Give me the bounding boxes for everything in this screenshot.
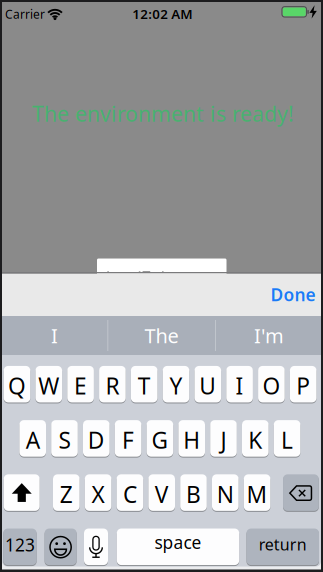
staticText: Q — [8, 371, 26, 401]
staticText: S — [58, 425, 70, 455]
staticText: K — [248, 425, 262, 455]
staticText: N — [217, 479, 234, 509]
staticText: Z — [60, 479, 73, 509]
button[interactable]: Done — [263, 273, 323, 315]
staticText: I — [51, 322, 58, 349]
button[interactable]: T — [131, 366, 157, 403]
button[interactable]: W — [35, 366, 62, 403]
staticText: I'm — [254, 322, 284, 349]
staticText: space — [154, 531, 201, 554]
button[interactable]: K — [242, 420, 269, 458]
button[interactable]: N — [212, 474, 239, 512]
button[interactable]: G — [147, 420, 173, 458]
button[interactable]: P — [290, 366, 316, 403]
button[interactable] — [84, 528, 108, 566]
staticText: E — [74, 371, 87, 401]
staticText: Done — [270, 283, 315, 306]
staticText: G — [151, 425, 168, 455]
staticText: O — [262, 371, 280, 401]
staticText: H — [183, 425, 200, 455]
staticText: Carrier — [5, 6, 45, 22]
button[interactable]: return — [246, 528, 319, 566]
button[interactable]: M — [244, 474, 270, 512]
button[interactable]: R — [99, 366, 126, 403]
staticText: return — [259, 534, 307, 555]
button[interactable]: E — [67, 366, 94, 403]
staticText: X — [92, 479, 105, 509]
staticText: D — [88, 425, 105, 455]
staticText: I — [236, 371, 244, 401]
button[interactable]: U — [194, 366, 221, 403]
staticText: Y — [169, 371, 182, 401]
button[interactable]: S — [51, 420, 78, 458]
staticText: 123 — [5, 533, 35, 556]
button[interactable]: J — [210, 420, 237, 458]
staticText: J — [220, 425, 226, 455]
staticText: F — [122, 425, 134, 455]
button[interactable]: 123 — [3, 528, 37, 566]
button[interactable]: O — [258, 366, 285, 403]
button[interactable]: space — [117, 528, 239, 566]
button[interactable]: V — [148, 474, 175, 512]
staticText: B — [186, 479, 201, 509]
button[interactable]: A — [19, 420, 46, 458]
button[interactable]: B — [180, 474, 207, 512]
staticText: U — [199, 371, 216, 401]
button[interactable]: D — [83, 420, 110, 458]
button[interactable] — [45, 528, 77, 566]
button[interactable]: F — [115, 420, 141, 458]
staticText: P — [296, 371, 310, 401]
staticText: The — [144, 322, 178, 349]
button[interactable]: I'm — [219, 316, 319, 354]
staticText: C — [123, 479, 137, 509]
staticText: M — [247, 479, 268, 509]
staticText: The environment is ready! — [32, 99, 294, 128]
button[interactable]: Y — [163, 366, 189, 403]
button[interactable] — [283, 474, 319, 512]
button[interactable]: C — [117, 474, 143, 512]
button[interactable]: I — [4, 316, 104, 354]
button[interactable]: L — [274, 420, 300, 458]
button[interactable]: Q — [4, 366, 30, 403]
button[interactable]: H — [178, 420, 205, 458]
staticText: W — [38, 371, 59, 401]
staticText: A — [26, 425, 40, 455]
staticText: L — [281, 425, 293, 455]
staticText: T — [138, 371, 151, 401]
staticText: V — [155, 479, 169, 509]
staticText: 12:02 AM — [132, 5, 192, 23]
button[interactable] — [4, 474, 40, 512]
staticText: R — [105, 371, 119, 401]
button[interactable]: I — [226, 366, 253, 403]
button[interactable] — [97, 258, 226, 276]
button[interactable]: X — [85, 474, 111, 512]
button[interactable]: The — [111, 316, 211, 354]
button[interactable]: Z — [53, 474, 80, 512]
